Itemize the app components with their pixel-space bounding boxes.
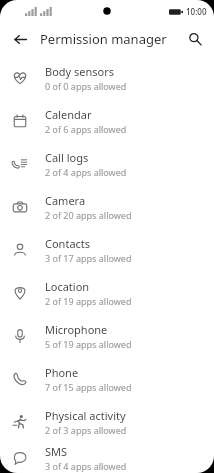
button[interactable]: Search <box>183 27 207 51</box>
staticText: Physical activity <box>45 408 126 423</box>
staticText: Body sensors <box>45 64 115 79</box>
staticText: Calendar <box>45 107 92 122</box>
staticText: 3 of 4 apps allowed <box>45 460 127 472</box>
staticText: 7 of 15 apps allowed <box>45 381 132 393</box>
button[interactable]: Location <box>0 271 214 314</box>
staticText: Phone <box>45 365 79 380</box>
button[interactable]: Body sensors <box>0 56 214 99</box>
staticText: 2 of 4 apps allowed <box>45 166 127 178</box>
staticText: 10:00 <box>186 6 207 17</box>
staticText: 2 of 19 apps allowed <box>45 295 132 307</box>
staticText: 2 of 20 apps allowed <box>45 209 132 221</box>
button[interactable]: Contacts <box>0 228 214 271</box>
button[interactable]: Phone <box>0 357 214 400</box>
button[interactable]: Physical activity <box>0 400 214 443</box>
staticText: 2 of 3 apps allowed <box>45 424 127 436</box>
button[interactable]: Back <box>8 27 32 51</box>
staticText: Call logs <box>45 150 89 165</box>
staticText: 0 of 0 apps allowed <box>45 80 127 92</box>
staticText: Permission manager <box>40 30 167 48</box>
button[interactable]: SMS <box>0 443 214 473</box>
button[interactable]: Microphone <box>0 314 214 357</box>
staticText: SMS <box>45 444 68 459</box>
staticText: 2 of 6 apps allowed <box>45 123 127 135</box>
staticText: Camera <box>45 193 86 208</box>
staticText: Contacts <box>45 236 91 251</box>
staticText: Microphone <box>45 322 108 337</box>
staticText: Location <box>45 279 90 294</box>
staticText: 3 of 17 apps allowed <box>45 252 132 264</box>
button[interactable]: Calendar <box>0 99 214 142</box>
button[interactable]: Camera <box>0 185 214 228</box>
staticText: 5 of 19 apps allowed <box>45 338 132 350</box>
button[interactable]: Call logs <box>0 142 214 185</box>
